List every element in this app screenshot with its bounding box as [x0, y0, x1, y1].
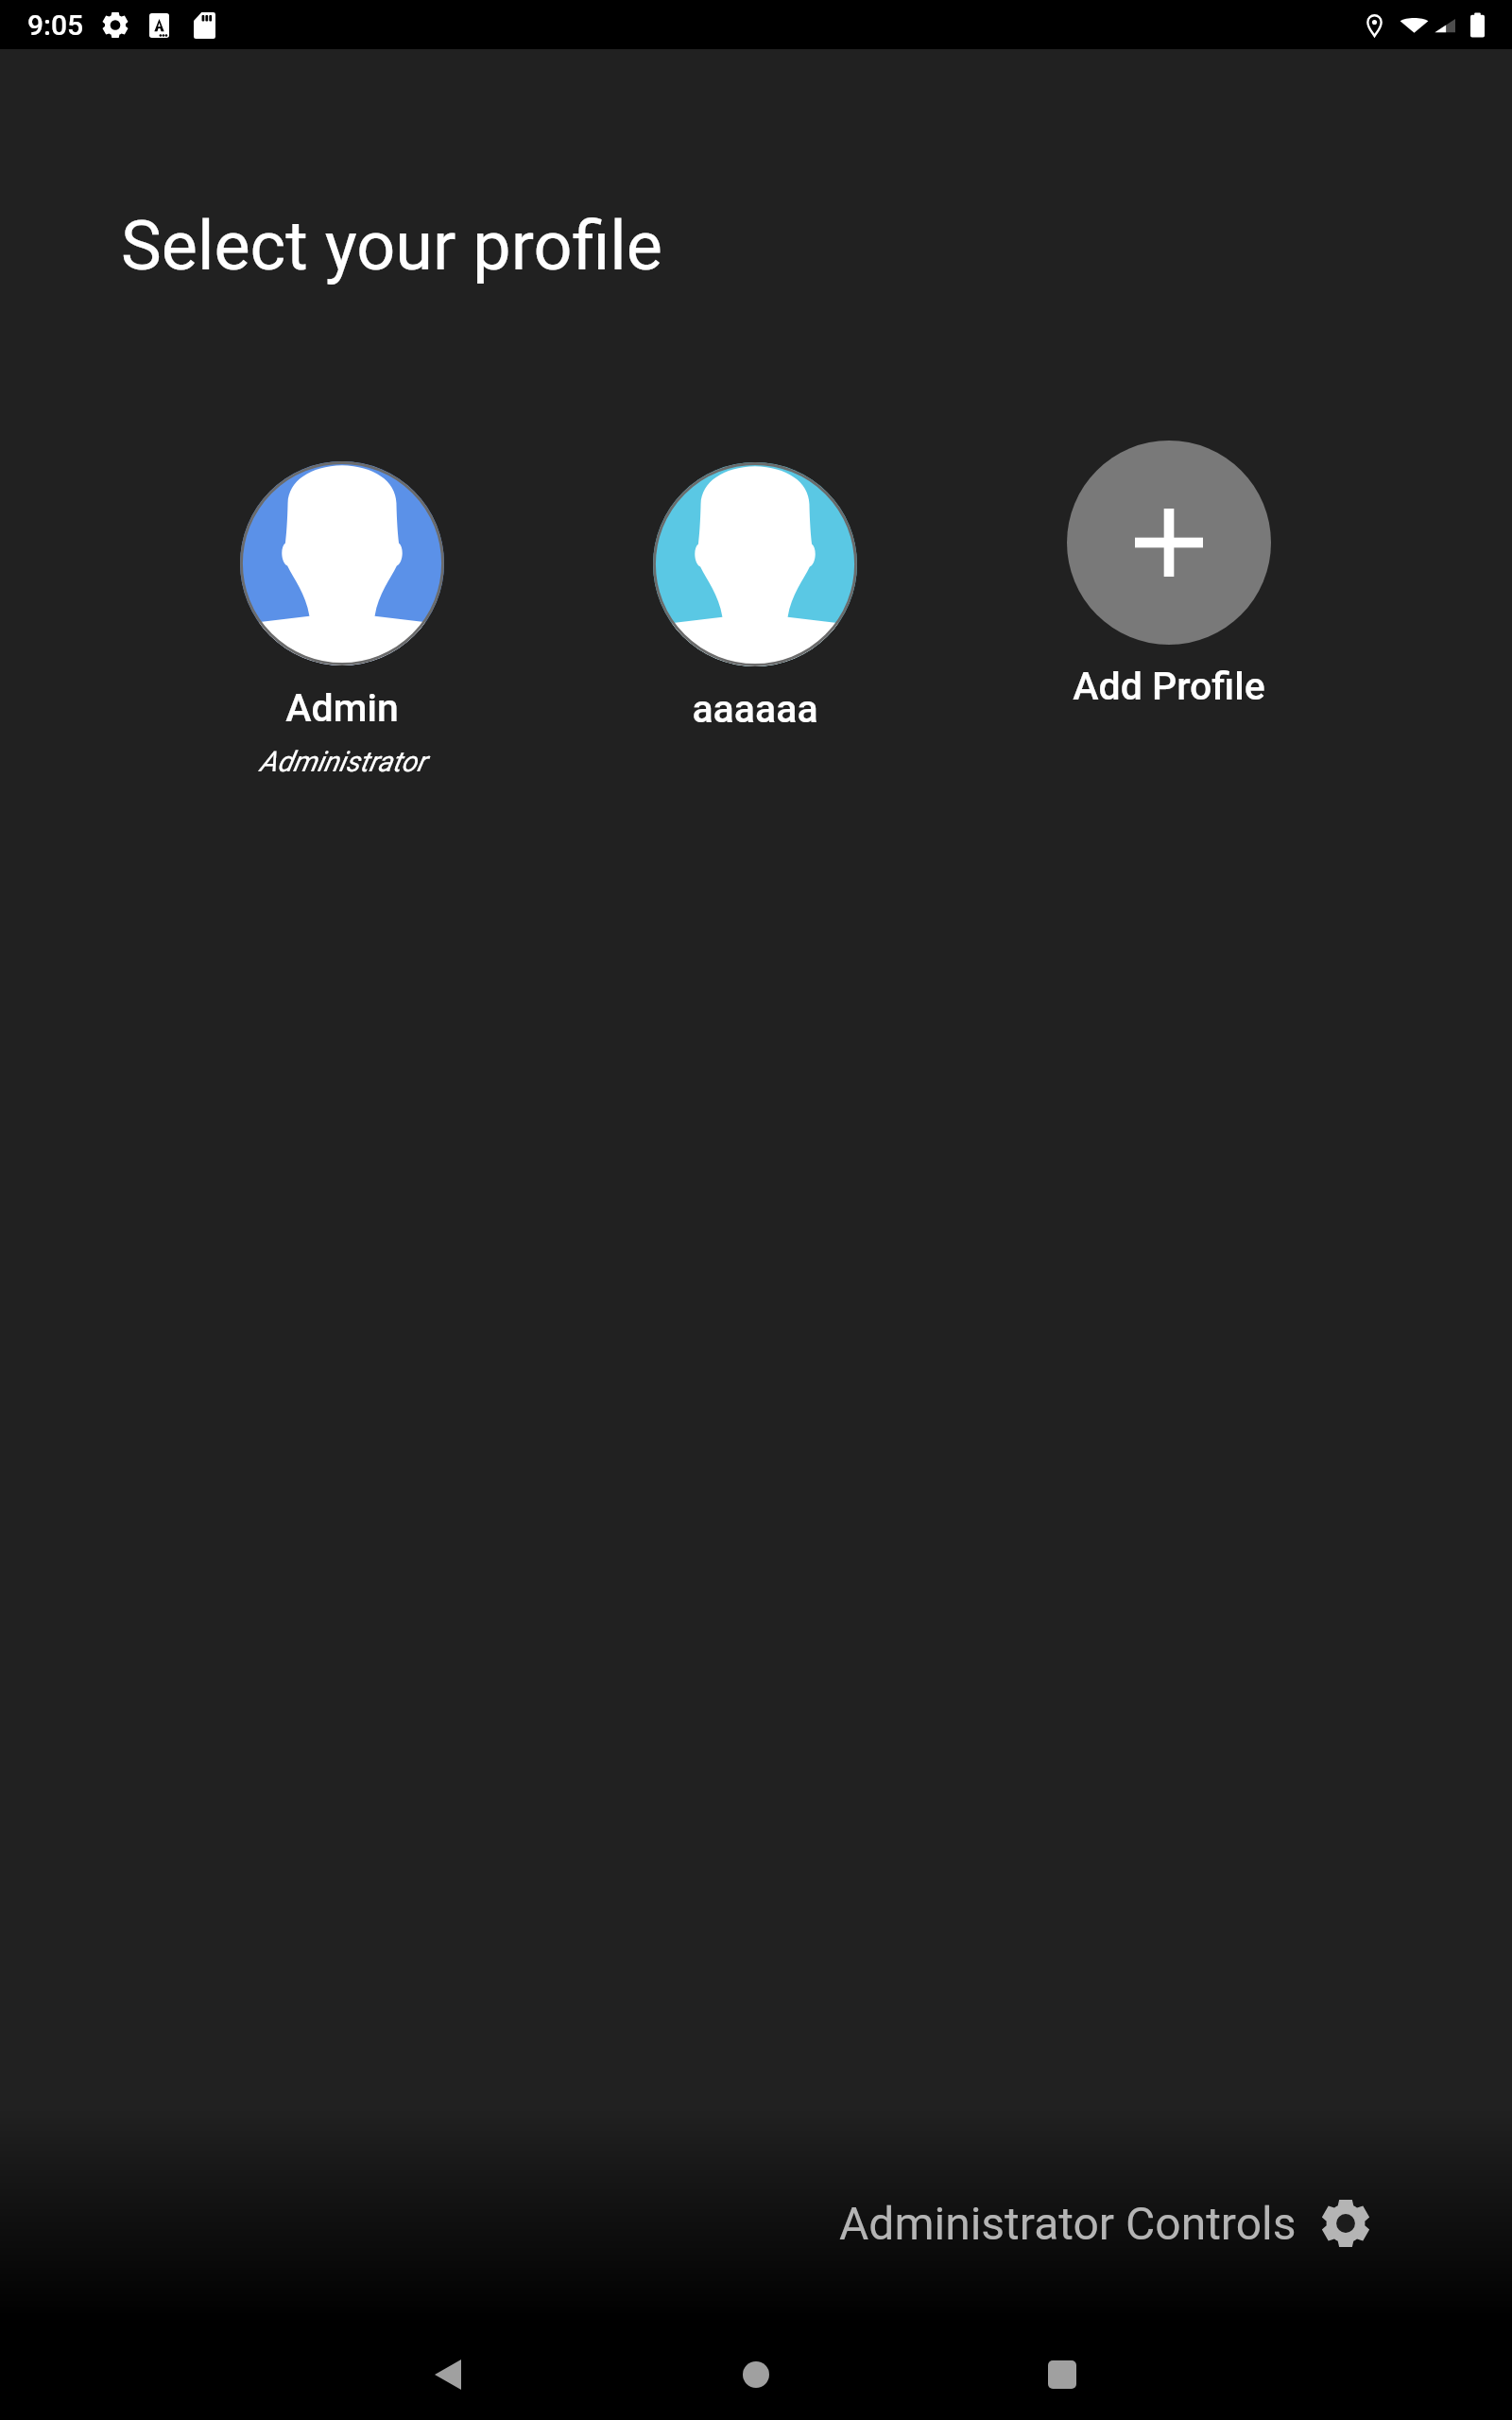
staticText: Administrator: [259, 745, 426, 778]
staticText: Admin: [285, 685, 399, 731]
button[interactable]: aaaaaa: [604, 462, 906, 732]
staticText: Select your profile: [121, 206, 663, 285]
button[interactable]: Administrator Controls: [839, 2197, 1370, 2250]
button[interactable]: Recents: [1021, 2333, 1104, 2416]
button[interactable]: Home: [714, 2333, 798, 2416]
button[interactable]: Admin: [191, 461, 493, 778]
staticText: 9:05: [27, 9, 84, 42]
button[interactable]: Add Profile: [1018, 441, 1320, 709]
staticText: Add Profile: [1073, 664, 1265, 709]
staticText: aaaaaa: [692, 686, 818, 732]
button[interactable]: Back: [406, 2333, 490, 2416]
staticText: Administrator Controls: [839, 2197, 1297, 2250]
